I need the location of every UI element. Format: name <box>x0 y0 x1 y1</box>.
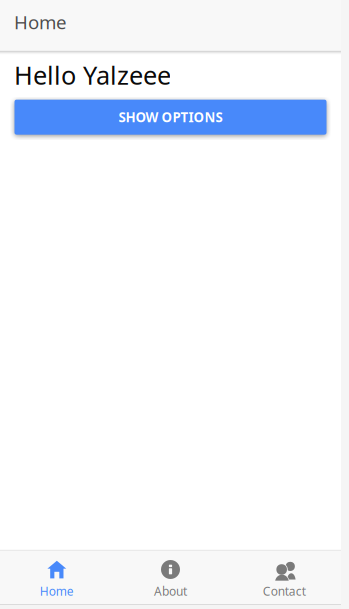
staticText: Home <box>40 583 74 599</box>
button[interactable]: About <box>114 551 227 604</box>
staticText: Hello Yalzeee <box>14 58 171 92</box>
staticText: About <box>154 583 187 599</box>
button[interactable]: SHOW OPTIONS <box>14 100 326 135</box>
staticText: Contact <box>263 583 306 599</box>
staticText: SHOW OPTIONS <box>118 108 222 126</box>
button[interactable]: Home <box>0 551 114 604</box>
button[interactable]: Contact <box>227 551 341 604</box>
staticText: Home <box>14 10 67 34</box>
